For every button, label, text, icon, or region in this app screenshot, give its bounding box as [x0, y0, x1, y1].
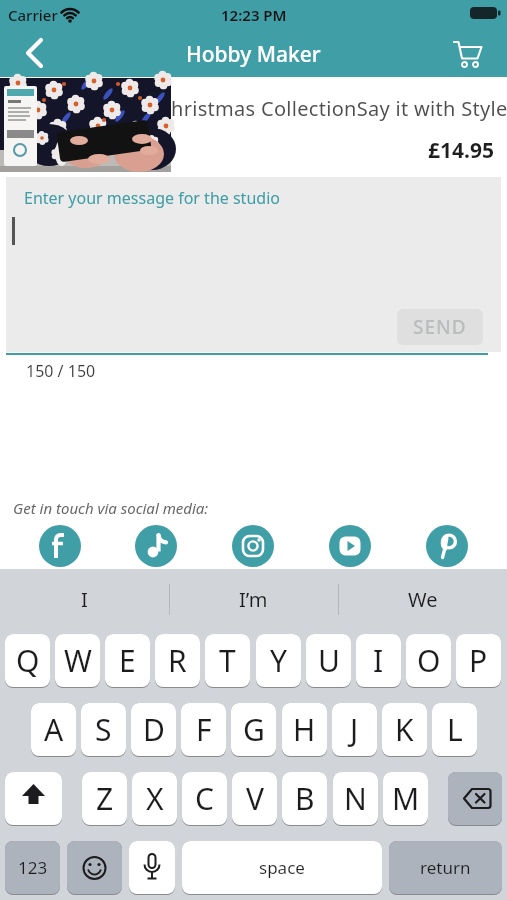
button[interactable]	[12, 31, 56, 75]
button[interactable]: SEND	[397, 309, 483, 345]
staticText: return	[420, 856, 471, 879]
staticText: Enter your message for the studio	[24, 187, 280, 209]
staticText: Y	[270, 640, 287, 681]
staticText: SEND	[413, 314, 467, 340]
button[interactable]	[426, 525, 468, 567]
button[interactable]: L	[432, 703, 477, 757]
button[interactable]: P	[456, 634, 501, 688]
button[interactable]: B	[282, 772, 327, 826]
staticText: W	[64, 640, 92, 681]
button[interactable]: return	[389, 841, 502, 895]
staticText: Z	[96, 778, 114, 819]
staticText: I	[373, 640, 384, 681]
staticText: Get in touch via social media:	[13, 498, 209, 518]
button[interactable]: X	[132, 772, 177, 826]
staticText: A	[44, 709, 64, 750]
button[interactable]: I	[356, 634, 401, 688]
button[interactable]	[129, 841, 175, 895]
staticText: 12:23 PM	[221, 5, 287, 25]
staticText: V	[246, 778, 264, 819]
button[interactable]: space	[182, 841, 382, 895]
staticText: I	[81, 586, 88, 613]
staticText: Hobby Maker	[186, 40, 321, 69]
button[interactable]: O	[406, 634, 451, 688]
staticText: 123	[18, 856, 48, 879]
button[interactable]	[329, 525, 371, 567]
button[interactable]: J	[332, 703, 377, 757]
button[interactable]	[448, 772, 502, 826]
staticText: K	[395, 709, 414, 750]
button[interactable]: I’m	[169, 569, 338, 630]
staticText: G	[243, 709, 265, 750]
staticText: T	[219, 640, 236, 681]
staticText: Carrier	[8, 5, 58, 25]
staticText: R	[168, 640, 187, 681]
button[interactable]: U	[306, 634, 351, 688]
button[interactable]: K	[382, 703, 427, 757]
staticText: E	[119, 640, 136, 681]
button[interactable]: E	[105, 634, 150, 688]
staticText: O	[417, 640, 441, 681]
button[interactable]: T	[205, 634, 250, 688]
button[interactable]: G	[231, 703, 276, 757]
staticText: H	[293, 709, 316, 750]
button[interactable]: We	[338, 569, 507, 630]
staticText: X	[146, 778, 164, 819]
button[interactable]: N	[333, 772, 378, 826]
button[interactable]: F	[181, 703, 226, 757]
staticText: hristmas CollectionSay it with Style	[171, 95, 507, 122]
button[interactable]	[67, 841, 122, 895]
staticText: D	[143, 709, 165, 750]
button[interactable]: V	[232, 772, 277, 826]
button[interactable]	[39, 525, 81, 567]
staticText: S	[95, 709, 112, 750]
staticText: We	[408, 586, 438, 613]
button[interactable]: H	[282, 703, 327, 757]
staticText: L	[447, 709, 463, 750]
button[interactable]: Z	[82, 772, 127, 826]
button[interactable]: A	[31, 703, 76, 757]
button[interactable]: W	[55, 634, 100, 688]
staticText: N	[344, 778, 367, 819]
staticText: I’m	[239, 586, 268, 613]
button[interactable]: Enter your message for the studio	[6, 177, 501, 352]
staticText: F	[196, 709, 212, 750]
button[interactable]: 123	[5, 841, 60, 895]
staticText: space	[259, 856, 305, 879]
staticText: Q	[16, 640, 40, 681]
button[interactable]	[135, 525, 177, 567]
button[interactable]: Q	[5, 634, 50, 688]
staticText: M	[392, 778, 420, 819]
button[interactable]: S	[81, 703, 126, 757]
button[interactable]: D	[131, 703, 176, 757]
button[interactable]: Y	[256, 634, 301, 688]
button[interactable]: I	[0, 569, 169, 630]
button[interactable]	[446, 36, 490, 72]
button[interactable]: C	[182, 772, 227, 826]
button[interactable]	[232, 525, 274, 567]
staticText: P	[469, 640, 488, 681]
button[interactable]: M	[383, 772, 428, 826]
staticText: B	[295, 778, 315, 819]
staticText: U	[318, 640, 340, 681]
button[interactable]: R	[155, 634, 200, 688]
button[interactable]	[5, 772, 62, 826]
staticText: 150 / 150	[26, 360, 96, 382]
staticText: C	[195, 778, 214, 819]
staticText: £14.95	[428, 136, 494, 165]
staticText: J	[350, 709, 359, 750]
